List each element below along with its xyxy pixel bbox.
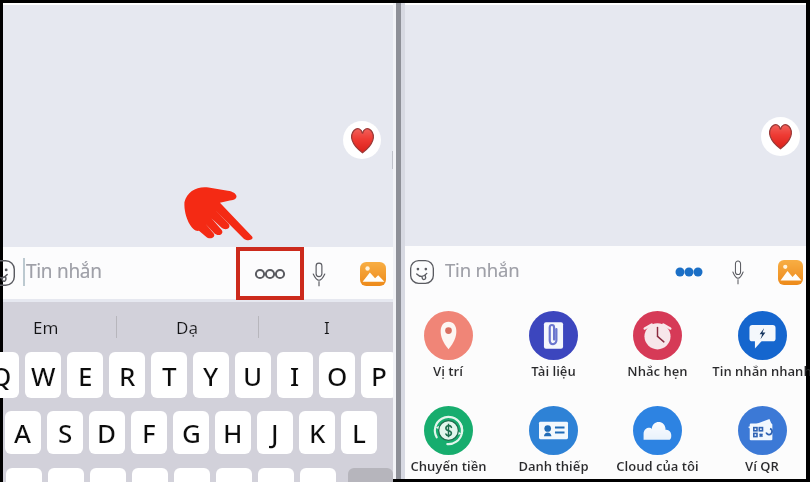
button[interactable]: W — [25, 352, 61, 398]
button[interactable]: A — [5, 411, 41, 454]
button[interactable]: M — [258, 468, 294, 482]
button[interactable]: Nhắc hẹn — [607, 311, 707, 380]
staticText: L — [352, 415, 366, 450]
button[interactable]: F — [131, 411, 167, 454]
staticText: Ví QR — [745, 457, 779, 475]
button[interactable]: X — [48, 468, 84, 482]
button[interactable]: T — [151, 352, 187, 398]
staticText: Danh thiếp — [518, 457, 589, 475]
staticText: A — [14, 415, 32, 450]
staticText: I — [324, 316, 330, 339]
button[interactable]: Gallery — [360, 262, 386, 286]
staticText: P — [371, 358, 387, 393]
button[interactable]: Tin nhắn nhanh — [712, 311, 810, 380]
button[interactable]: Q — [0, 352, 19, 398]
button[interactable]: Chuyển tiền — [398, 406, 498, 475]
staticText: W — [31, 358, 56, 393]
staticText: Y — [203, 358, 219, 393]
button[interactable]: More options — [675, 267, 703, 277]
button[interactable]: O — [319, 352, 355, 398]
staticText: Tin nhắn — [26, 258, 102, 284]
button[interactable]: K — [300, 468, 336, 482]
staticText: Nhắc hẹn — [627, 362, 688, 380]
staticText: U — [243, 358, 263, 393]
staticText: T — [162, 358, 177, 393]
button[interactable]: Voice message — [310, 261, 328, 287]
button[interactable]: Cloud của tôi — [607, 406, 707, 475]
button[interactable]: Y — [193, 352, 229, 398]
staticText: Tin nhắn nhanh — [712, 362, 810, 380]
button[interactable]: E — [67, 352, 103, 398]
button[interactable]: B — [174, 468, 210, 482]
button[interactable]: I — [277, 352, 313, 398]
button[interactable]: Tài liệu — [503, 311, 603, 380]
button[interactable]: J — [257, 411, 293, 454]
staticText: R — [119, 358, 136, 393]
button[interactable]: P — [361, 352, 397, 398]
staticText: Q — [0, 358, 12, 393]
button[interactable]: Em — [16, 305, 76, 349]
button[interactable]: Z — [6, 468, 42, 482]
staticText: Em — [33, 316, 59, 339]
staticText: Vị trí — [433, 362, 463, 380]
button[interactable]: I — [297, 305, 357, 349]
button[interactable]: G — [173, 411, 209, 454]
button[interactable]: Voice message — [730, 259, 746, 285]
staticText: Cloud của tôi — [616, 457, 699, 475]
staticText: J — [271, 415, 279, 450]
staticText: S — [58, 415, 73, 450]
button[interactable]: Backspace — [348, 468, 393, 482]
button[interactable]: K — [299, 411, 335, 454]
button[interactable]: Heart sticker — [761, 117, 800, 156]
staticText: G — [182, 415, 201, 450]
staticText: Tài liệu — [531, 362, 576, 380]
button[interactable]: R — [109, 352, 145, 398]
button[interactable]: H — [215, 411, 251, 454]
staticText: Dạ — [176, 316, 198, 339]
staticText: Tin nhắn — [445, 257, 520, 282]
staticText: I — [290, 358, 300, 393]
button[interactable]: S — [47, 411, 83, 454]
button[interactable]: Vị trí — [398, 311, 498, 380]
button[interactable]: Danh thiếp — [503, 406, 603, 475]
button[interactable]: More options — [255, 269, 285, 279]
staticText: F — [142, 415, 156, 450]
button[interactable]: Dạ — [157, 305, 217, 349]
staticText: D — [97, 415, 117, 450]
staticText: K — [309, 415, 326, 450]
button[interactable]: L — [341, 411, 377, 454]
staticText: H — [223, 415, 243, 450]
button[interactable]: D — [89, 411, 125, 454]
button[interactable]: Ví QR — [712, 406, 810, 475]
button[interactable]: Heart sticker — [343, 121, 381, 159]
button[interactable]: N — [216, 468, 252, 482]
staticText: Chuyển tiền — [410, 457, 487, 475]
button[interactable]: U — [235, 352, 271, 398]
button[interactable]: Gallery — [778, 260, 803, 285]
button[interactable]: C — [90, 468, 126, 482]
staticText: O — [327, 358, 348, 393]
button[interactable]: V — [132, 468, 168, 482]
staticText: E — [78, 358, 93, 393]
